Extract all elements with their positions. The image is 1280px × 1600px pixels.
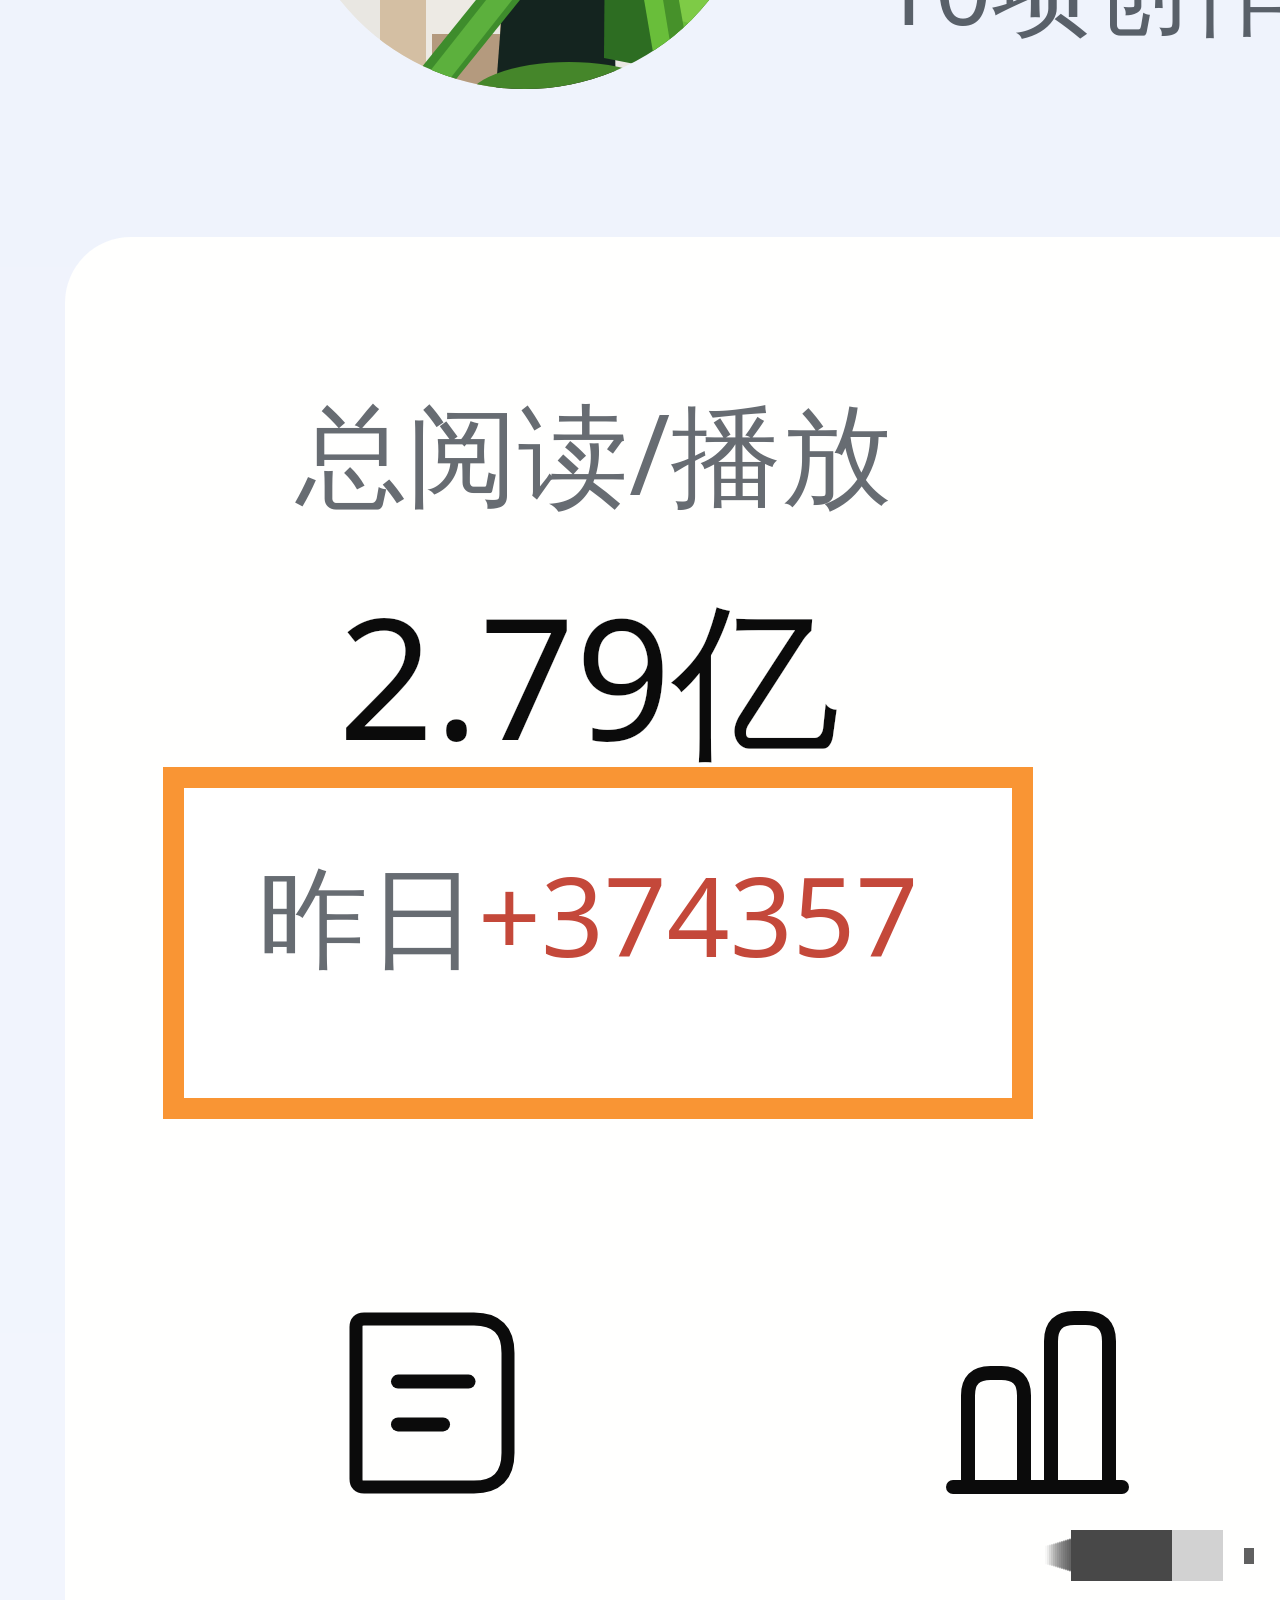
staticText: 10项创作 (878, 0, 1280, 54)
button[interactable]: 2.79亿 (338, 560, 840, 789)
button[interactable]: 总阅读/播放 (296, 376, 893, 528)
button[interactable]: 昨日+374357 (184, 788, 1012, 1098)
staticText: 2.79亿 (338, 560, 840, 789)
staticText: 昨日+374357 (258, 839, 919, 989)
staticText: 总阅读/播放 (296, 376, 893, 528)
button[interactable]: Articles (347, 1310, 517, 1496)
button[interactable]: Statistics (940, 1302, 1136, 1502)
button[interactable]: 10项创作 (878, 0, 1280, 54)
